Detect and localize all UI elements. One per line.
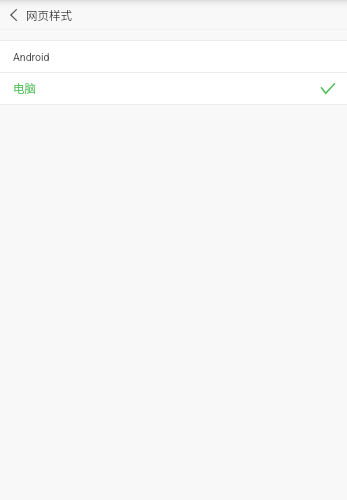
- button[interactable]: Android: [0, 41, 347, 72]
- button[interactable]: 电脑: [0, 73, 347, 104]
- staticText: 电脑: [13, 80, 36, 97]
- staticText: Android: [13, 51, 50, 63]
- button[interactable]: Back: [0, 0, 27, 30]
- staticText: 网页样式: [26, 7, 72, 24]
